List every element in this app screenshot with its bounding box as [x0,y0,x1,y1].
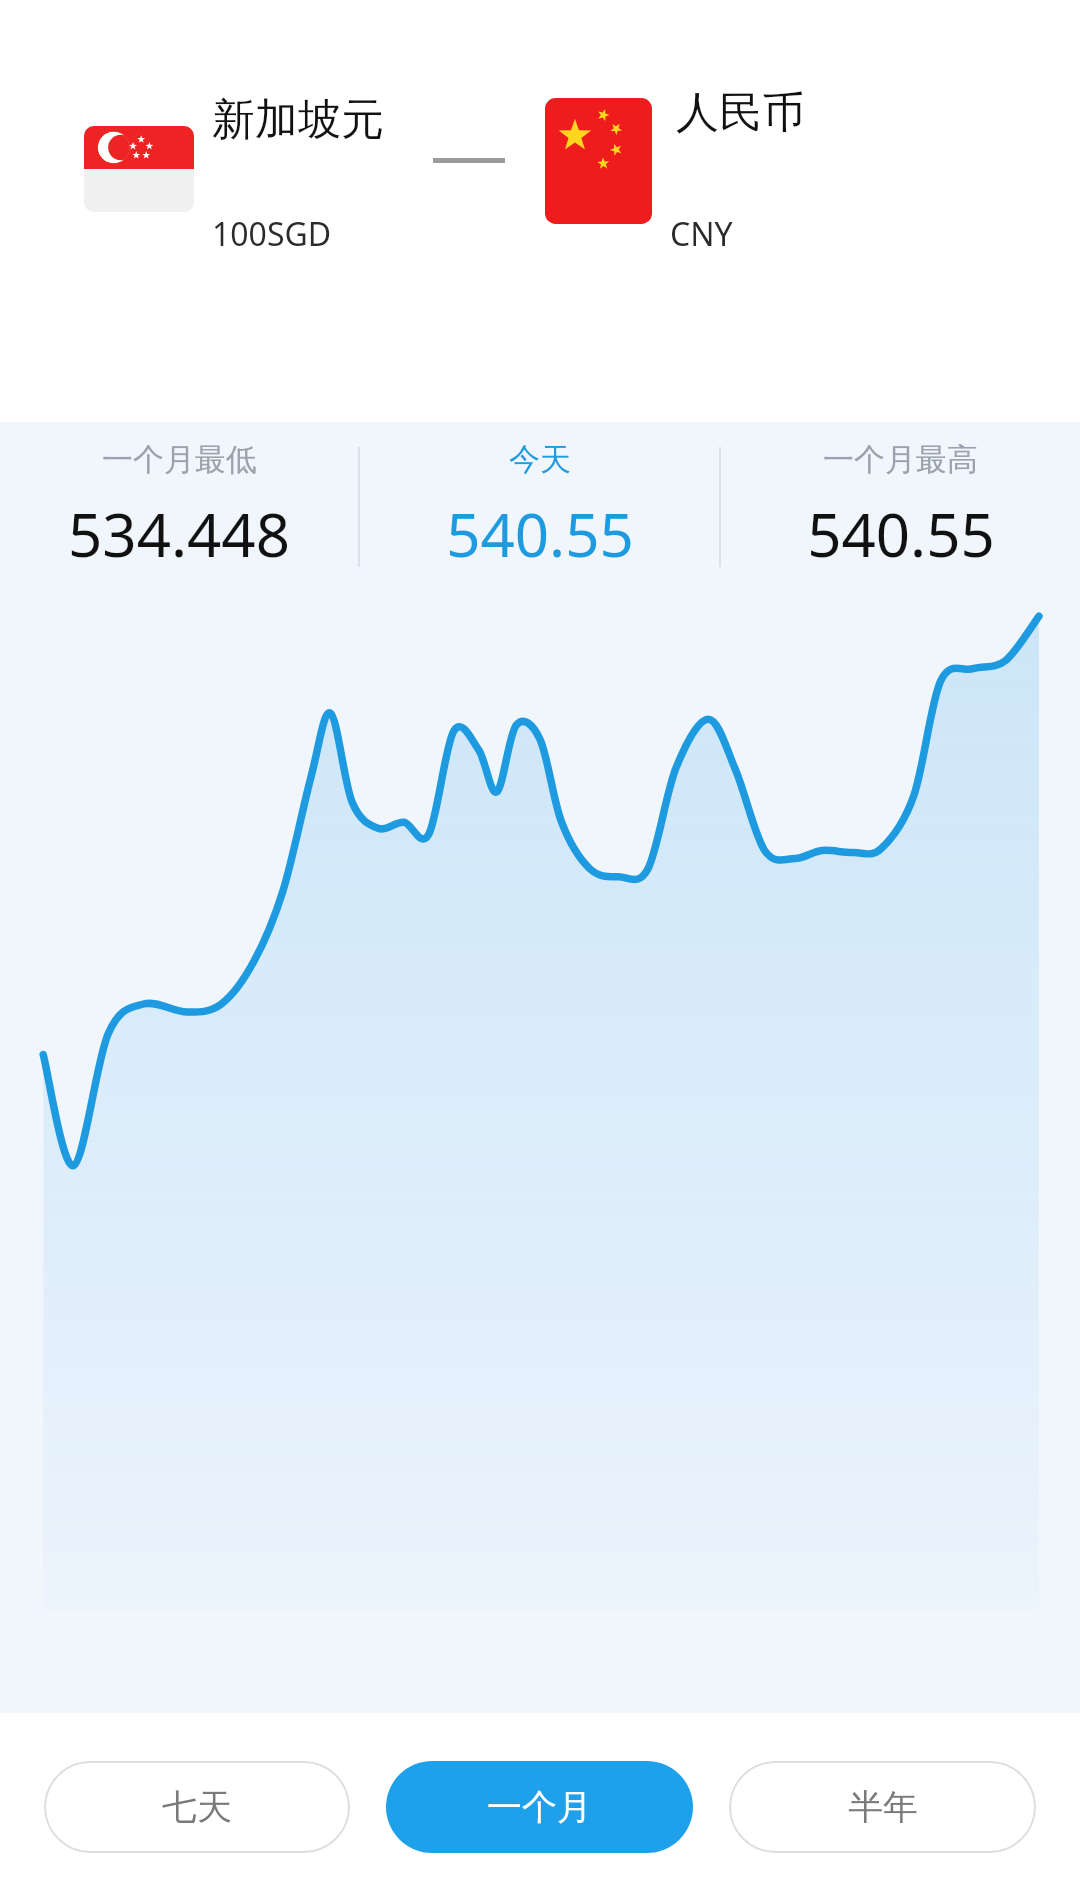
staticText: 100SGD [212,212,332,256]
button[interactable]: 一个月最高 [721,440,1080,575]
staticText: 一个月 [487,1785,592,1829]
staticText: 540.55 [807,493,995,575]
staticText: 半年 [848,1785,918,1829]
staticText: 534.448 [68,493,290,575]
button[interactable]: 七天 [44,1761,350,1853]
button[interactable]: 半年 [729,1761,1036,1853]
staticText: 人民币 [676,86,805,140]
button[interactable]: 一个月 [386,1761,693,1853]
staticText: 540.55 [446,493,634,575]
button[interactable]: 今天 [360,440,719,575]
staticText: 今天 [509,440,571,479]
staticText: CNY [670,212,733,256]
staticText: 一个月最低 [102,440,257,479]
staticText: 七天 [162,1785,232,1829]
staticText: 新加坡元 [212,93,384,147]
button[interactable]: 一个月最低 [0,440,358,575]
staticText: 一个月最高 [823,440,978,479]
